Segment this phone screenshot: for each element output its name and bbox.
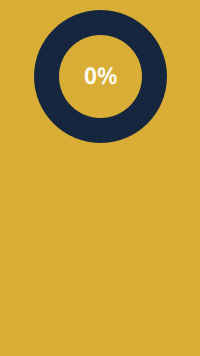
button[interactable]: Progress 0 percent xyxy=(34,10,167,143)
staticText: 0% xyxy=(84,60,117,90)
